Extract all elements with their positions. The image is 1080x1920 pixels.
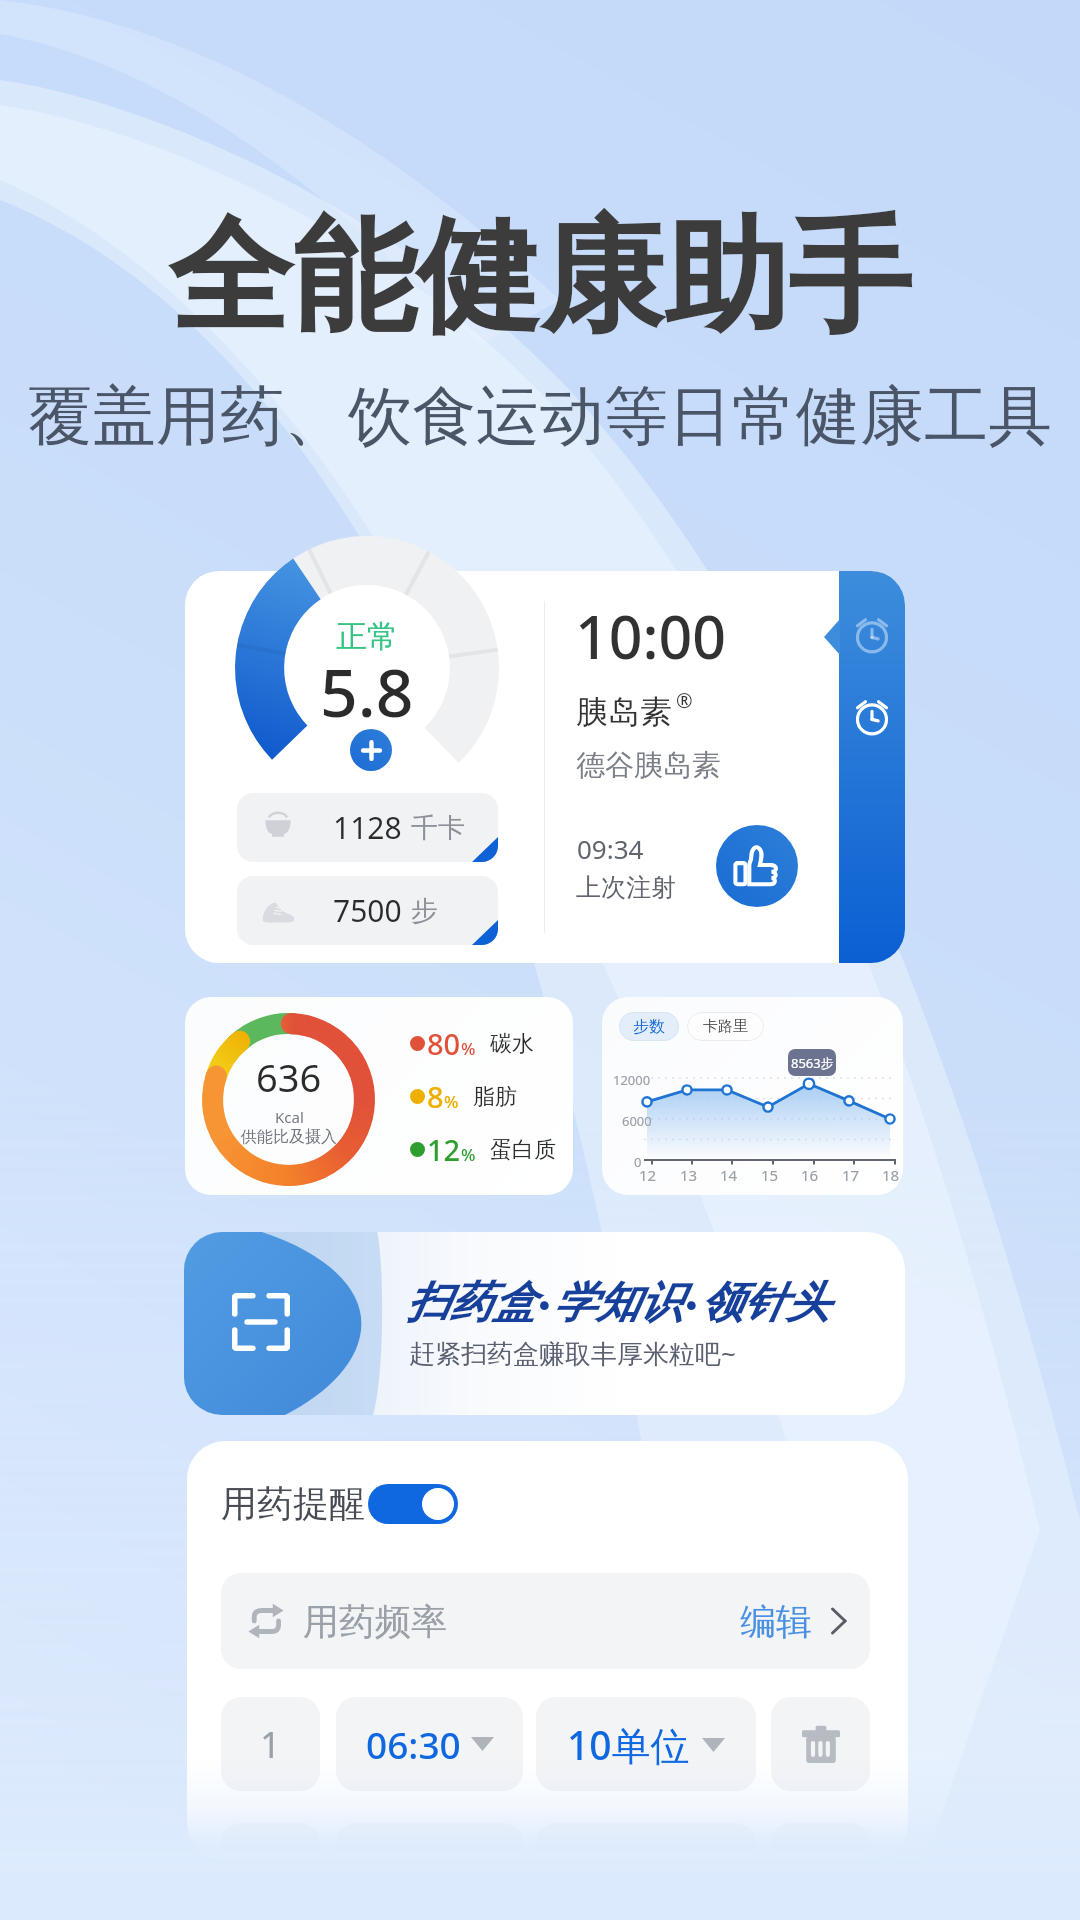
- staticText: 15: [761, 1165, 779, 1185]
- staticText: 扫药盒: [406, 1276, 535, 1330]
- staticText: 覆盖用药、饮食运动等日常健康工具: [0, 376, 1080, 457]
- staticText: 636: [256, 1051, 322, 1103]
- button[interactable]: Reminders: [839, 571, 905, 963]
- button[interactable]: 7500: [237, 876, 498, 945]
- staticText: 卡路里: [703, 1017, 748, 1036]
- staticText: 编辑: [740, 1599, 812, 1644]
- staticText: 千卡: [411, 811, 465, 845]
- staticText: 1: [260, 1720, 281, 1769]
- button[interactable]: Confirm injection: [716, 825, 798, 907]
- staticText: 6000: [622, 1112, 652, 1130]
- staticText: 7500: [333, 890, 402, 931]
- button[interactable]: 1128: [237, 793, 498, 862]
- staticText: 碳水: [490, 1030, 534, 1058]
- staticText: 蛋白质: [490, 1136, 556, 1164]
- button[interactable]: 扫药盒: [184, 1232, 905, 1415]
- staticText: 18: [882, 1165, 900, 1185]
- button[interactable]: 06:30: [336, 1697, 523, 1791]
- staticText: 供能比及摄入: [241, 1127, 337, 1147]
- staticText: %: [461, 1037, 476, 1060]
- button[interactable]: Add blood sugar reading: [350, 729, 392, 771]
- staticText: 正常: [336, 617, 398, 656]
- staticText: %: [461, 1143, 476, 1166]
- staticText: 步数: [633, 1017, 665, 1037]
- staticText: 14: [720, 1165, 738, 1185]
- button[interactable]: Delete: [771, 1697, 870, 1791]
- button[interactable]: 10单位: [536, 1697, 756, 1791]
- staticText: %: [444, 1090, 459, 1113]
- staticText: 胰岛素: [576, 692, 672, 732]
- staticText: 上次注射: [576, 872, 676, 903]
- staticText: 步: [411, 894, 438, 928]
- staticText: 80: [427, 1024, 461, 1063]
- button[interactable]: 用药频率: [221, 1573, 870, 1669]
- staticText: 06:30: [366, 1719, 461, 1769]
- staticText: 全能健康助手: [0, 200, 1080, 356]
- staticText: 学知识: [553, 1276, 682, 1330]
- staticText: 领针头: [700, 1276, 829, 1330]
- button[interactable]: 卡路里: [687, 1012, 764, 1041]
- staticText: 09:34: [577, 831, 644, 866]
- staticText: 用药提醒: [221, 1481, 365, 1526]
- staticText: 8: [427, 1077, 444, 1116]
- staticText: 赶紧扫药盒赚取丰厚米粒吧~: [409, 1335, 736, 1371]
- staticText: 脂肪: [473, 1083, 517, 1111]
- staticText: 13: [680, 1165, 698, 1185]
- staticText: 12: [427, 1130, 461, 1169]
- staticText: 8563步: [791, 1054, 834, 1072]
- button[interactable]: 步数: [619, 1012, 679, 1041]
- staticText: 16: [801, 1165, 819, 1185]
- staticText: 12: [639, 1165, 657, 1185]
- button[interactable]: 1128: [185, 571, 905, 963]
- staticText: 德谷胰岛素: [576, 747, 721, 784]
- button[interactable]: Medication reminder toggle: [368, 1484, 458, 1524]
- staticText: Kcal: [275, 1107, 304, 1127]
- staticText: 10:00: [575, 596, 727, 676]
- button[interactable]: 636: [185, 997, 573, 1195]
- staticText: 10单位: [567, 1718, 690, 1771]
- staticText: 1128: [333, 807, 402, 848]
- staticText: 用药频率: [303, 1599, 447, 1644]
- staticText: 17: [842, 1165, 860, 1185]
- staticText: ®: [676, 687, 693, 714]
- staticText: 12000: [613, 1071, 651, 1089]
- button[interactable]: 步数: [602, 997, 903, 1195]
- staticText: 5.8: [320, 646, 414, 736]
- staticText: 0: [634, 1153, 642, 1171]
